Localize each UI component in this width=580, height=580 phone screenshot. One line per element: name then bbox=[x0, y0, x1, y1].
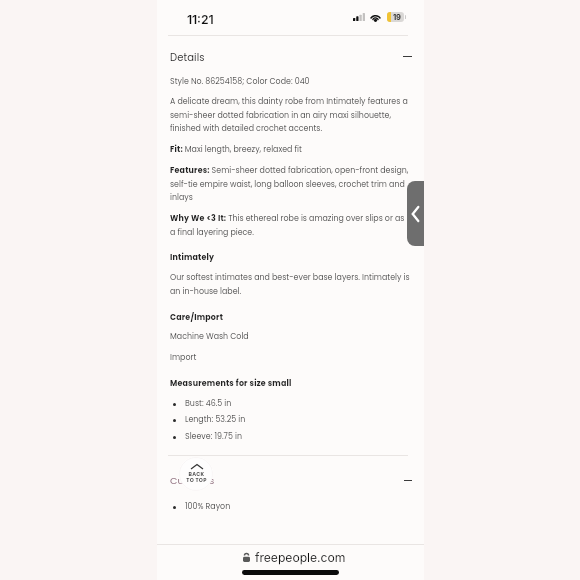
staticText: Bust: 46.5 in bbox=[185, 398, 411, 409]
staticText: Details bbox=[170, 50, 205, 64]
button[interactable]: freepeople.com bbox=[243, 549, 346, 566]
staticText: A delicate dream, this dainty robe from … bbox=[170, 96, 411, 134]
staticText: Intimately bbox=[170, 252, 411, 263]
staticText: BACK TO TOP bbox=[186, 471, 207, 484]
staticText: 11:21 bbox=[187, 12, 214, 27]
staticText: Fit: Maxi length, breezy, relaxed fit bbox=[170, 144, 411, 155]
button[interactable]: Back to top bbox=[179, 457, 213, 491]
staticText: Sleeve: 19.75 in bbox=[185, 431, 411, 442]
staticText: 100% Rayon bbox=[185, 501, 411, 512]
staticText: Machine Wash Cold bbox=[170, 331, 411, 342]
staticText: Cushions bbox=[170, 474, 215, 487]
staticText: freepeople.com bbox=[255, 550, 346, 565]
staticText: Care/Import bbox=[170, 312, 411, 323]
staticText: Style No. 86254158; Color Code: 040 bbox=[170, 76, 411, 87]
staticText: Measurements for size small bbox=[170, 378, 411, 389]
staticText: Length: 53.25 in bbox=[185, 414, 411, 425]
staticText: Features: Semi-sheer dotted fabrication,… bbox=[170, 165, 411, 203]
button[interactable]: Details bbox=[170, 46, 412, 67]
staticText: 19 bbox=[393, 13, 401, 22]
staticText: Import bbox=[170, 352, 411, 363]
staticText: Our softest intimates and best-ever base… bbox=[170, 272, 411, 297]
staticText: Why We <3 It: This ethereal robe is amaz… bbox=[170, 213, 411, 238]
other: Wi-Fi bbox=[370, 13, 381, 21]
button[interactable]: Open side panel bbox=[407, 181, 424, 246]
button[interactable]: Cushions bbox=[170, 470, 412, 491]
